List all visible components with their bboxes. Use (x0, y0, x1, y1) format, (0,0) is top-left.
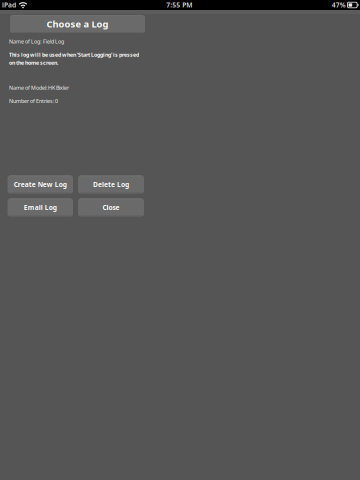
button[interactable]: Choose a Log (10, 15, 145, 33)
staticText: Number of Entries: 0 (9, 97, 58, 104)
button[interactable]: Close (78, 198, 144, 216)
staticText: Create New Log (14, 180, 67, 189)
staticText: iPad (2, 1, 16, 9)
staticText: Close (102, 203, 119, 212)
staticText: Choose a Log (46, 18, 108, 30)
staticText: Email Log (24, 203, 57, 212)
button[interactable]: Email Log (7, 198, 73, 216)
staticText: Name of Model: HK Bixler (9, 84, 69, 91)
staticText: Delete Log (93, 180, 129, 189)
staticText: Name of Log: Field Log (9, 38, 64, 45)
button[interactable]: Delete Log (78, 175, 144, 193)
staticText: 7:55 PM (166, 1, 192, 9)
staticText: This log will be used when 'Start Loggin… (9, 51, 139, 58)
button[interactable]: Create New Log (7, 175, 73, 193)
staticText: 47% (332, 1, 346, 9)
staticText: on the home screen. (9, 59, 58, 66)
